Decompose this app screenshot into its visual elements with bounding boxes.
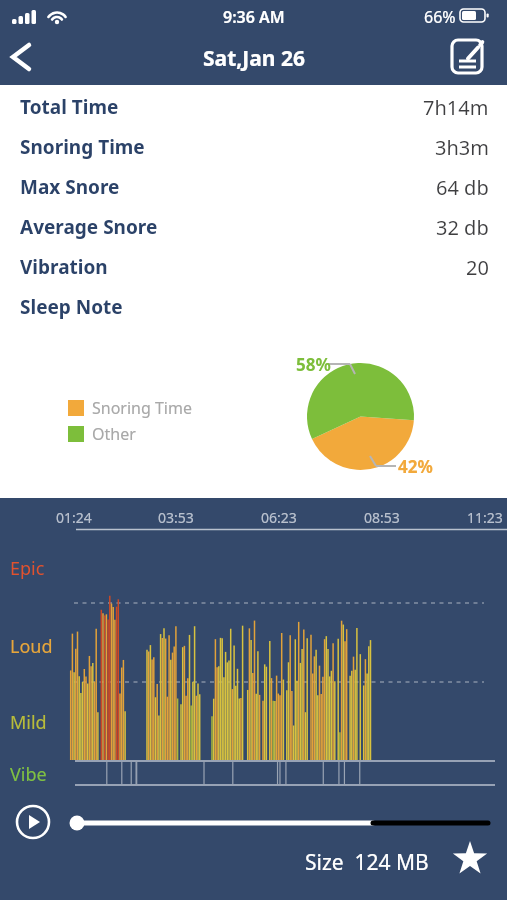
button[interactable]: Vibration <box>20 247 489 287</box>
staticText: 58% <box>296 353 331 376</box>
staticText: Vibe <box>10 762 47 787</box>
staticText: 66% <box>424 6 456 28</box>
button[interactable] <box>15 804 51 840</box>
staticText: 01:24 <box>56 508 92 527</box>
staticText: 42% <box>398 455 433 478</box>
staticText: Sat,Jan 26 <box>203 44 305 73</box>
staticText: Snoring Time <box>92 397 192 419</box>
staticText: 08:53 <box>364 508 400 527</box>
button[interactable]: Total Time <box>20 87 489 127</box>
staticText: 64 db <box>436 174 489 201</box>
button[interactable] <box>60 808 500 838</box>
staticText: Other <box>92 423 136 445</box>
button[interactable] <box>0 38 40 76</box>
staticText: Size 124 MB <box>305 848 429 877</box>
staticText: 11:23 <box>467 508 503 527</box>
staticText: Total Time <box>20 94 119 120</box>
staticText: Vibration <box>20 254 108 280</box>
staticText: 3h3m <box>435 134 489 161</box>
staticText: 06:23 <box>261 508 297 527</box>
button[interactable] <box>450 840 490 880</box>
staticText: Average Snore <box>20 214 158 240</box>
staticText: Sleep Note <box>20 294 123 320</box>
staticText: Max Snore <box>20 174 120 200</box>
button[interactable]: Max Snore <box>20 167 489 207</box>
staticText: Snoring Time <box>20 134 145 160</box>
button[interactable] <box>448 38 492 80</box>
staticText: 9:36 AM <box>223 6 285 28</box>
staticText: Loud <box>10 634 53 659</box>
staticText: Epic <box>10 556 45 581</box>
staticText: 03:53 <box>158 508 194 527</box>
button[interactable]: Sleep Note <box>20 287 489 327</box>
staticText: 20 <box>466 254 489 281</box>
staticText: 7h14m <box>423 94 489 121</box>
staticText: 32 db <box>436 214 489 241</box>
button[interactable]: Snoring Time <box>20 127 489 167</box>
button[interactable]: Average Snore <box>20 207 489 247</box>
staticText: Mild <box>10 710 47 735</box>
